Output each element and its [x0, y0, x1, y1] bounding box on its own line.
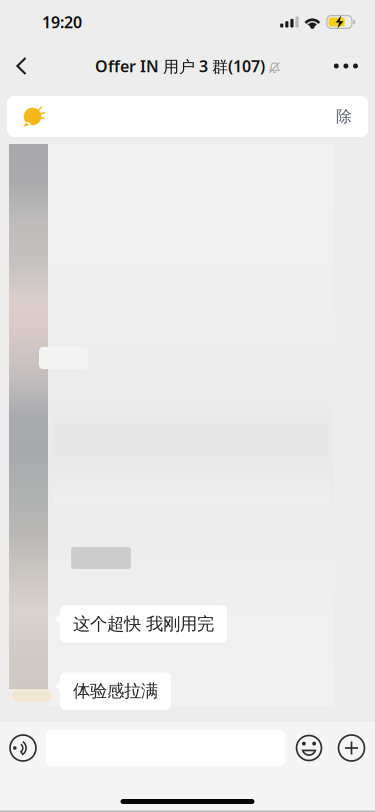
button[interactable]: Back — [0, 44, 46, 88]
staticText: 这个超快 我刚用完 — [73, 613, 214, 635]
staticText: Offer IN 用户 3 群(107) — [95, 55, 265, 77]
button[interactable]: More — [333, 722, 370, 774]
staticText: 19:20 — [42, 11, 82, 33]
button[interactable]: More — [315, 44, 375, 88]
staticText: 除 — [336, 107, 352, 126]
staticText: 体验感拉满 — [73, 680, 158, 702]
button[interactable]: Voice message — [0, 722, 46, 774]
button[interactable]: Emoji — [285, 722, 333, 774]
button[interactable]: Group announcement — [0, 96, 375, 137]
